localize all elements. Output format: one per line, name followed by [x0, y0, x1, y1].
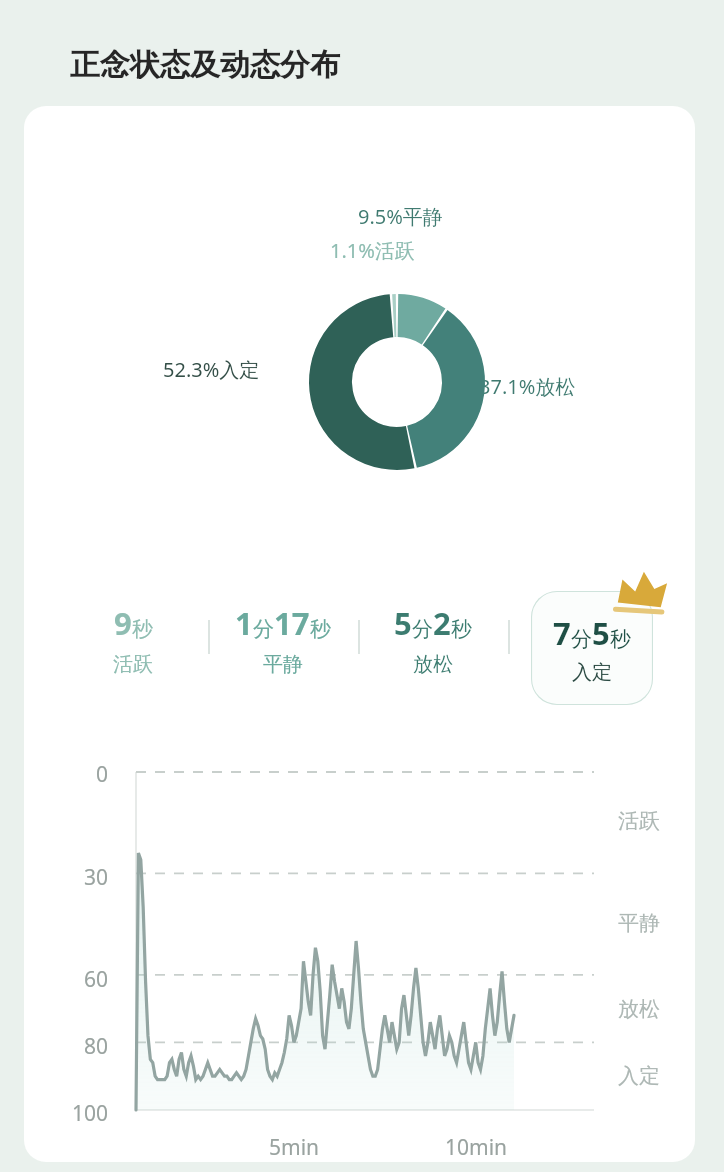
staticText: 100: [48, 1099, 108, 1128]
staticText: 5min: [269, 1133, 320, 1162]
staticText: 2: [433, 602, 451, 644]
staticText: 活跃: [113, 652, 153, 677]
staticText: 正念状态及动态分布: [70, 46, 340, 84]
staticText: 9: [114, 602, 132, 644]
button[interactable]: 1: [213, 602, 353, 677]
staticText: 秒: [451, 616, 472, 642]
staticText: 37.1%放松: [479, 373, 576, 400]
staticText: 17: [274, 602, 310, 644]
staticText: 5: [394, 602, 412, 644]
staticText: 平静: [263, 652, 303, 677]
button[interactable]: 9: [78, 602, 188, 677]
staticText: 9.5%平静: [358, 203, 443, 230]
button[interactable]: 9.5%平静: [24, 106, 695, 1162]
staticText: 1.1%活跃: [330, 237, 415, 264]
staticText: 放松: [413, 652, 453, 677]
staticText: 平静: [618, 910, 660, 936]
staticText: 放松: [618, 996, 660, 1022]
staticText: 60: [48, 965, 108, 994]
staticText: 入定: [618, 1063, 660, 1089]
staticText: 1: [235, 602, 253, 644]
staticText: 入定: [572, 660, 612, 685]
staticText: 5: [592, 612, 610, 654]
staticText: 0: [48, 760, 108, 789]
staticText: 分: [253, 616, 274, 642]
other: Best state crown: [612, 565, 670, 613]
staticText: 分: [412, 616, 433, 642]
staticText: 分: [571, 626, 592, 652]
button[interactable]: 7: [531, 591, 653, 705]
staticText: 52.3%入定: [163, 356, 260, 383]
button[interactable]: 5: [363, 602, 503, 677]
staticText: 活跃: [618, 808, 660, 834]
staticText: 7: [553, 612, 571, 654]
staticText: 10min: [445, 1133, 508, 1162]
staticText: 30: [48, 863, 108, 892]
staticText: 秒: [310, 616, 331, 642]
staticText: 80: [48, 1032, 108, 1061]
staticText: 秒: [132, 616, 153, 642]
staticText: 秒: [610, 626, 631, 652]
